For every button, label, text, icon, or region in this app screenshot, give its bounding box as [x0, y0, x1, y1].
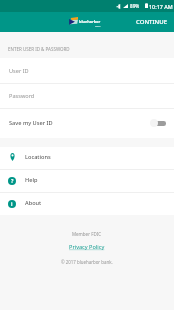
button[interactable]: User ID — [0, 58, 174, 83]
button[interactable]: Locations — [0, 147, 174, 169]
staticText: © 2017 blueharbor bank. — [61, 259, 113, 265]
staticText: 89% — [130, 3, 140, 9]
staticText: About — [25, 199, 42, 207]
staticText: ENTER USER ID & PASSWORD — [8, 46, 70, 52]
staticText: Member FDIC — [72, 231, 102, 237]
staticText: Help — [25, 176, 38, 184]
button[interactable]: Privacy Policy — [69, 243, 105, 251]
staticText: Password — [9, 92, 35, 100]
staticText: Privacy Policy — [69, 243, 105, 251]
button[interactable]: CONTINUE — [129, 13, 174, 31]
button[interactable]: ? — [0, 170, 174, 192]
staticText: Save my User ID — [9, 119, 53, 127]
button[interactable]: Password — [0, 84, 174, 108]
staticText: 10:17 AM — [149, 3, 173, 10]
staticText: Locations — [25, 153, 51, 161]
staticText: i — [11, 201, 13, 208]
staticText: ? — [11, 178, 14, 185]
staticText: User ID — [9, 67, 29, 75]
staticText: CONTINUE — [136, 18, 167, 26]
button[interactable]: Save my User ID — [0, 109, 174, 138]
button[interactable]: i — [0, 193, 174, 215]
staticText: blueharbor — [79, 19, 101, 24]
staticText: bank — [95, 24, 101, 27]
